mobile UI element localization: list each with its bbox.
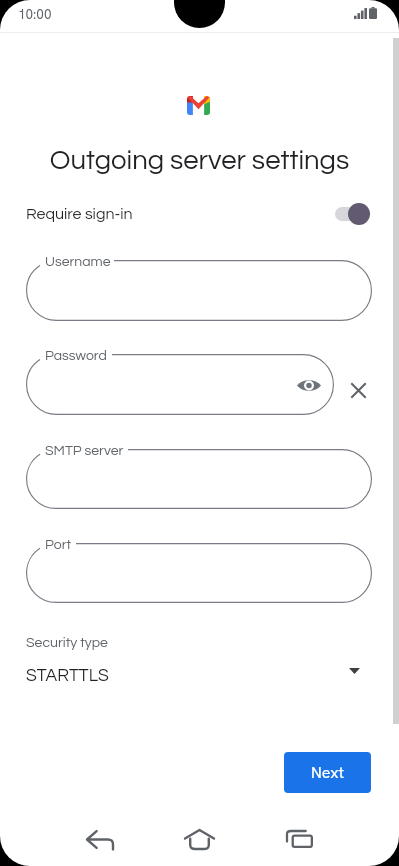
button[interactable]: Recent apps (278, 817, 322, 861)
staticText: SMTP server (45, 444, 124, 458)
staticText: Outgoing server settings (0, 146, 399, 174)
staticText: Next (311, 762, 345, 783)
button[interactable]: Home (177, 817, 221, 861)
button[interactable]: Password (26, 354, 334, 415)
staticText: 10:00 (18, 5, 52, 23)
button[interactable]: Security type (0, 631, 399, 691)
staticText: Port (45, 538, 72, 552)
button[interactable]: Require sign-in (0, 196, 399, 232)
staticText: Require sign-in (26, 206, 133, 222)
button[interactable]: Clear password (340, 372, 376, 408)
staticText: Security type (26, 636, 108, 650)
button[interactable]: Require sign-in (332, 199, 374, 229)
button[interactable]: Next (284, 752, 371, 793)
staticText: Username (45, 255, 111, 269)
button[interactable]: Port (26, 543, 372, 603)
button[interactable]: Back (78, 817, 122, 861)
staticText: Password (45, 349, 107, 363)
button[interactable]: Username (26, 260, 372, 321)
staticText: STARTTLS (26, 667, 109, 685)
button[interactable]: SMTP server (26, 449, 372, 509)
button[interactable]: Show password (292, 368, 326, 402)
